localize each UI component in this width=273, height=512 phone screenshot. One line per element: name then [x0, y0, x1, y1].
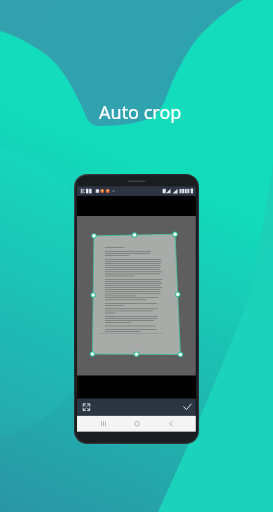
- button[interactable]: Auto crop preview: [74, 174, 199, 444]
- staticText: Auto crop: [99, 100, 182, 125]
